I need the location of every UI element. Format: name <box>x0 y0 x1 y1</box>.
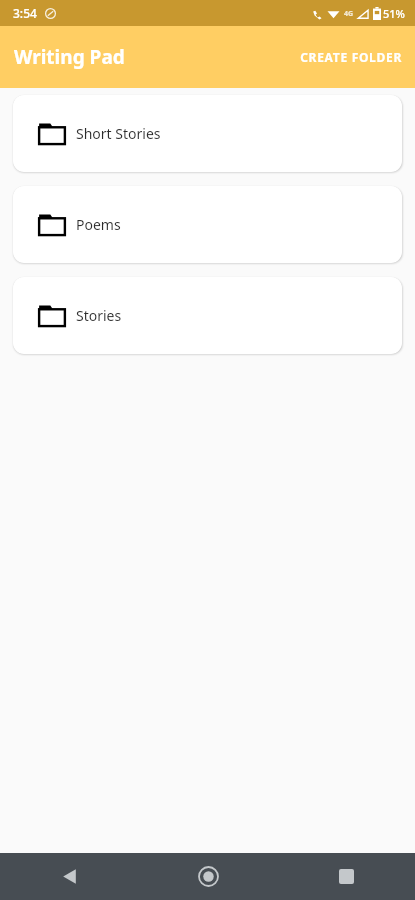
button[interactable]: CREATE FOLDER <box>287 41 415 73</box>
staticText: CREATE FOLDER <box>300 49 402 65</box>
staticText: Poems <box>76 215 121 234</box>
button[interactable]: Recent apps <box>277 853 415 900</box>
staticText: 4G <box>344 9 354 19</box>
staticText: 51% <box>383 6 405 21</box>
button[interactable]: Poems <box>13 186 402 263</box>
button[interactable]: Home <box>139 853 277 900</box>
button[interactable]: Stories <box>13 277 402 354</box>
staticText: Writing Pad <box>14 44 125 70</box>
staticText: Short Stories <box>76 124 161 143</box>
staticText: 3:54 <box>13 5 37 21</box>
button[interactable]: Short Stories <box>13 95 402 172</box>
staticText: Stories <box>76 306 122 325</box>
button[interactable]: Back <box>0 853 139 900</box>
